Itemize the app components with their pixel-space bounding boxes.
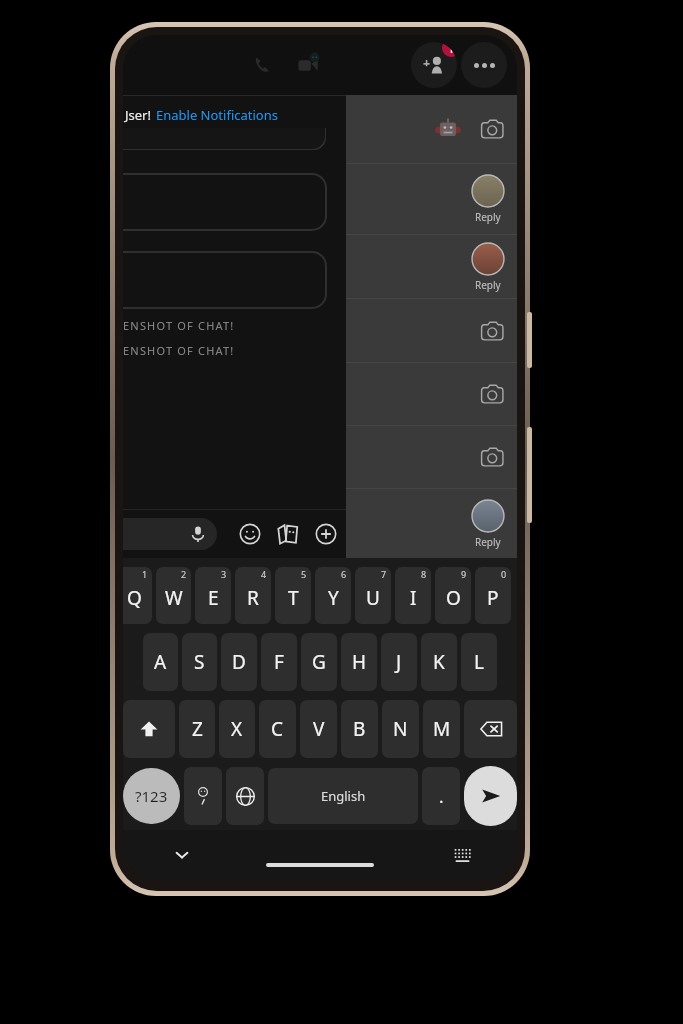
button[interactable]: Send snap: [346, 363, 517, 425]
staticText: 6: [341, 568, 347, 580]
button[interactable]: L: [461, 633, 497, 691]
button[interactable]: U: [355, 567, 391, 624]
staticText: 5: [301, 568, 307, 580]
staticText: 9: [461, 568, 467, 580]
staticText: J: [396, 649, 402, 675]
staticText: ENSHOT OF CHAT!: [123, 318, 235, 333]
staticText: 7: [381, 568, 387, 580]
staticText: Q: [127, 585, 142, 611]
button[interactable]: More options: [461, 42, 507, 88]
button[interactable]: Video chat: [287, 44, 329, 86]
staticText: Y: [328, 585, 339, 611]
button[interactable]: W: [156, 567, 191, 624]
staticText: 1: [448, 42, 455, 56]
button[interactable]: A: [143, 633, 178, 691]
staticText: R: [247, 585, 259, 611]
staticText: Reply: [475, 210, 501, 224]
staticText: E: [208, 585, 219, 611]
button[interactable]: Backspace: [464, 700, 517, 758]
button[interactable]: Hide keyboard: [167, 840, 197, 870]
button[interactable]: E: [195, 567, 231, 624]
staticText: Reply: [475, 535, 501, 549]
staticText: Reply: [475, 278, 501, 292]
button[interactable]: G: [301, 633, 337, 691]
button[interactable]: N: [382, 700, 419, 758]
staticText: N: [393, 716, 408, 742]
button[interactable]: Switch keyboard: [447, 840, 477, 870]
staticText: D: [232, 649, 246, 675]
staticText: S: [194, 649, 205, 675]
button[interactable]: P: [475, 567, 511, 624]
other: Send snap: [477, 114, 507, 144]
button[interactable]: V: [300, 700, 337, 758]
staticText: C: [271, 716, 284, 742]
other: Send snap: [477, 379, 507, 409]
staticText: 1: [142, 568, 148, 580]
staticText: 2: [181, 568, 187, 580]
button[interactable]: Send snap: [346, 426, 517, 488]
button[interactable]: Shift: [123, 700, 175, 758]
button[interactable]: Voice input: [123, 518, 217, 550]
button[interactable]: Reply: [346, 164, 517, 234]
staticText: G: [312, 649, 326, 675]
staticText: X: [231, 716, 243, 742]
button[interactable]: S: [182, 633, 217, 691]
staticText: W: [165, 585, 183, 611]
staticText: ENSHOT OF CHAT!: [123, 343, 235, 358]
staticText: O: [446, 585, 461, 611]
staticText: .: [439, 785, 444, 808]
button[interactable]: Reply: [346, 489, 517, 558]
button[interactable]: O: [435, 567, 471, 624]
button[interactable]: Send snap: [346, 299, 517, 362]
button[interactable]: D: [221, 633, 257, 691]
button[interactable]: Emoji: [235, 519, 265, 549]
button[interactable]: Q: [123, 567, 152, 624]
staticText: 4: [261, 568, 267, 580]
button[interactable]: Enable Notifications: [156, 106, 278, 124]
button[interactable]: Change language: [226, 767, 264, 825]
staticText: A: [154, 649, 167, 675]
button[interactable]: J: [381, 633, 417, 691]
button[interactable]: F: [261, 633, 297, 691]
other: Send snap: [477, 316, 507, 346]
button[interactable]: Send: [464, 766, 517, 826]
button[interactable]: K: [421, 633, 457, 691]
staticText: 8: [421, 568, 427, 580]
staticText: B: [353, 716, 366, 742]
button[interactable]: X: [219, 700, 255, 758]
button[interactable]: T: [275, 567, 311, 624]
staticText: Jser!: [125, 106, 151, 124]
button[interactable]: Add attachment: [311, 519, 340, 549]
staticText: U: [366, 585, 380, 611]
staticText: English: [321, 787, 366, 805]
staticText: I: [410, 585, 417, 611]
staticText: H: [352, 649, 367, 675]
staticText: 3: [221, 568, 227, 580]
staticText: T: [288, 585, 299, 611]
button[interactable]: Y: [315, 567, 351, 624]
button[interactable]: M: [423, 700, 460, 758]
other: Send snap: [477, 442, 507, 472]
button[interactable]: Emoji and comma: [184, 767, 222, 825]
staticText: ?123: [135, 786, 168, 806]
staticText: P: [487, 585, 499, 611]
button[interactable]: Call: [241, 44, 283, 86]
staticText: V: [313, 716, 325, 742]
staticText: Enable Notifications: [156, 106, 278, 124]
button[interactable]: H: [341, 633, 377, 691]
button[interactable]: English: [268, 768, 418, 824]
button[interactable]: C: [259, 700, 296, 758]
button[interactable]: R: [235, 567, 271, 624]
button[interactable]: Reply: [346, 235, 517, 298]
staticText: Z: [192, 716, 203, 742]
staticText: K: [433, 649, 445, 675]
button[interactable]: Z: [179, 700, 215, 758]
button[interactable]: B: [341, 700, 378, 758]
button[interactable]: I: [395, 567, 431, 624]
button[interactable]: Add friend: [411, 42, 457, 88]
button[interactable]: Send snap: [346, 95, 517, 163]
button[interactable]: ?123: [123, 768, 180, 824]
button[interactable]: .: [422, 767, 460, 825]
staticText: M: [433, 716, 451, 742]
button[interactable]: Stickers: [273, 519, 303, 549]
